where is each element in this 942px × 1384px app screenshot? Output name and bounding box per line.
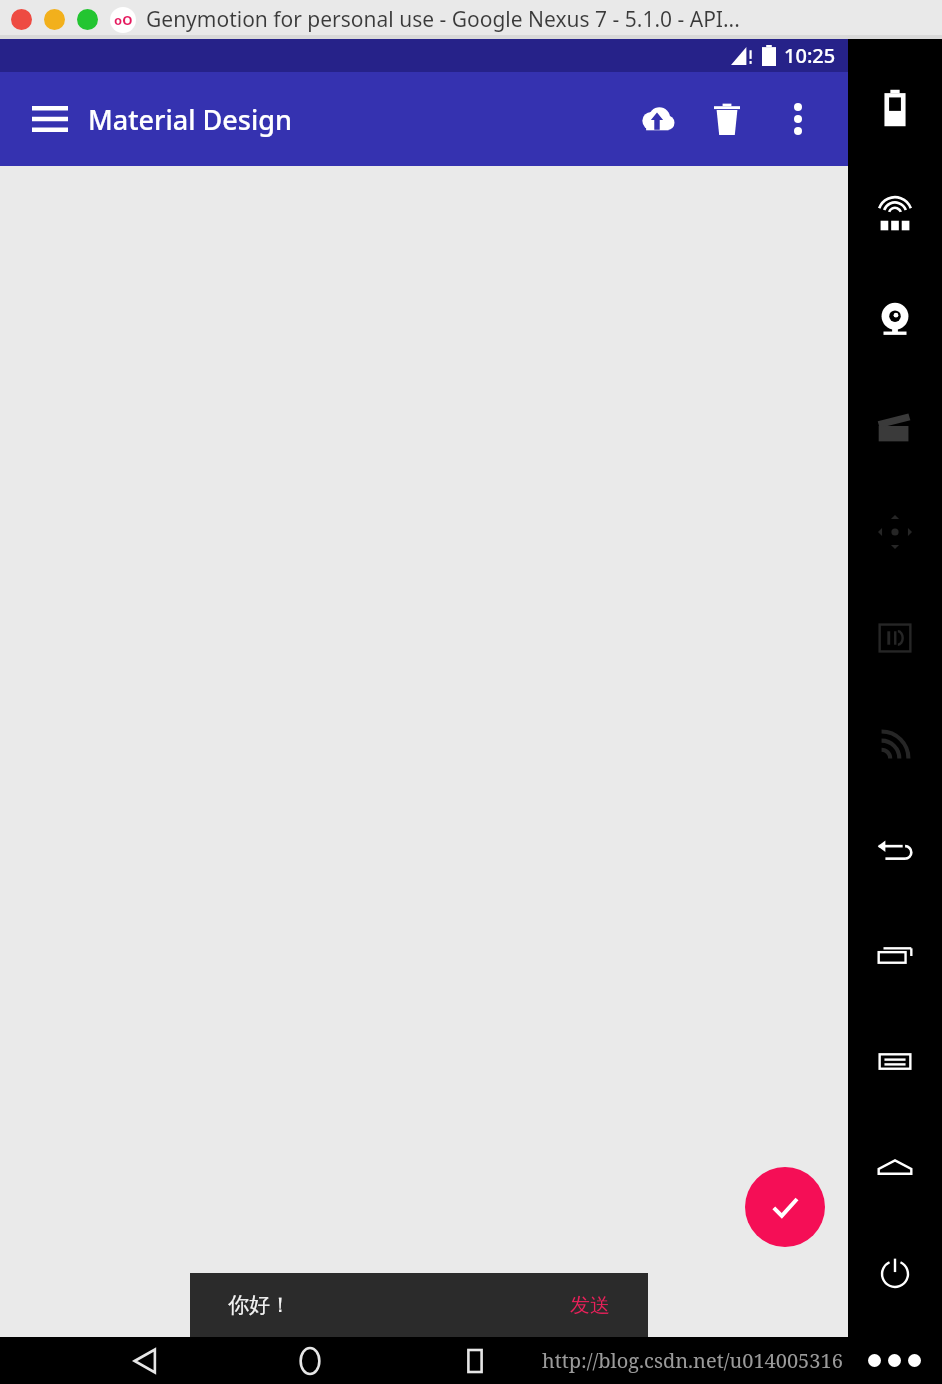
button[interactable]: Home [280, 1337, 340, 1384]
button[interactable]: Delete [698, 90, 756, 148]
button[interactable]: Power [848, 1221, 942, 1327]
button[interactable]: Upload [628, 90, 686, 148]
button[interactable]: Done [745, 1167, 825, 1247]
staticText: 10:25 [784, 42, 836, 69]
button[interactable]: Recents [848, 903, 942, 1009]
button[interactable]: Network [848, 691, 942, 797]
staticText: 发送 [570, 1293, 610, 1318]
button[interactable]: Open navigation drawer [22, 91, 78, 147]
button[interactable]: Window control [44, 9, 65, 30]
button[interactable]: D-pad [848, 479, 942, 585]
button[interactable]: Screencast [848, 373, 942, 479]
button[interactable]: Battery [848, 55, 942, 161]
button[interactable]: Window control [11, 9, 32, 30]
staticText: 你好！ [228, 1292, 291, 1318]
staticText: Genymotion for personal use - Google Nex… [146, 5, 740, 34]
button[interactable]: 你好！ [190, 1273, 648, 1337]
button[interactable]: Home [848, 1115, 942, 1221]
staticText: Material Design [88, 101, 292, 138]
button[interactable]: Window control [77, 9, 98, 30]
button[interactable]: GPS [848, 161, 942, 267]
button[interactable]: Menu [848, 1009, 942, 1115]
button[interactable]: Back [848, 797, 942, 903]
button[interactable]: Camera [848, 267, 942, 373]
button[interactable]: 发送 [570, 1293, 610, 1318]
button[interactable]: More options [770, 91, 826, 147]
button[interactable]: Genymotion [110, 7, 136, 33]
staticText: http://blog.csdn.net/u014005316 [542, 1347, 843, 1374]
button[interactable]: Recent apps [445, 1337, 505, 1384]
staticText: oO [114, 11, 133, 29]
button[interactable]: Back [115, 1337, 175, 1384]
button[interactable]: Identifiers [848, 585, 942, 691]
